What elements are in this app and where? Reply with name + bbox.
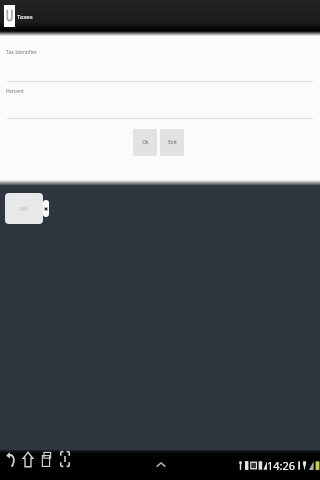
staticText: Ok bbox=[142, 139, 149, 146]
button[interactable]: Show notifications bbox=[153, 457, 169, 473]
staticText: Exit bbox=[168, 139, 177, 146]
button[interactable]: Screenshot bbox=[56, 450, 74, 468]
other: Taxes app icon bbox=[4, 5, 15, 27]
button[interactable]: Recent apps bbox=[37, 450, 55, 468]
staticText: Taxes bbox=[17, 13, 33, 21]
staticText: Tax Identifier bbox=[6, 49, 37, 56]
staticText: 14:26 bbox=[267, 458, 296, 473]
staticText: Percent bbox=[6, 88, 24, 95]
button[interactable]: Taxes app icon bbox=[0, 0, 320, 31]
button[interactable]: Ok bbox=[133, 129, 157, 156]
button[interactable]: Exit bbox=[160, 129, 184, 156]
staticText: val bbox=[19, 204, 29, 214]
button[interactable]: Back bbox=[1, 450, 19, 468]
button[interactable]: val bbox=[5, 193, 43, 224]
button[interactable]: Home bbox=[19, 450, 37, 468]
button[interactable]: Clear bbox=[43, 200, 49, 217]
